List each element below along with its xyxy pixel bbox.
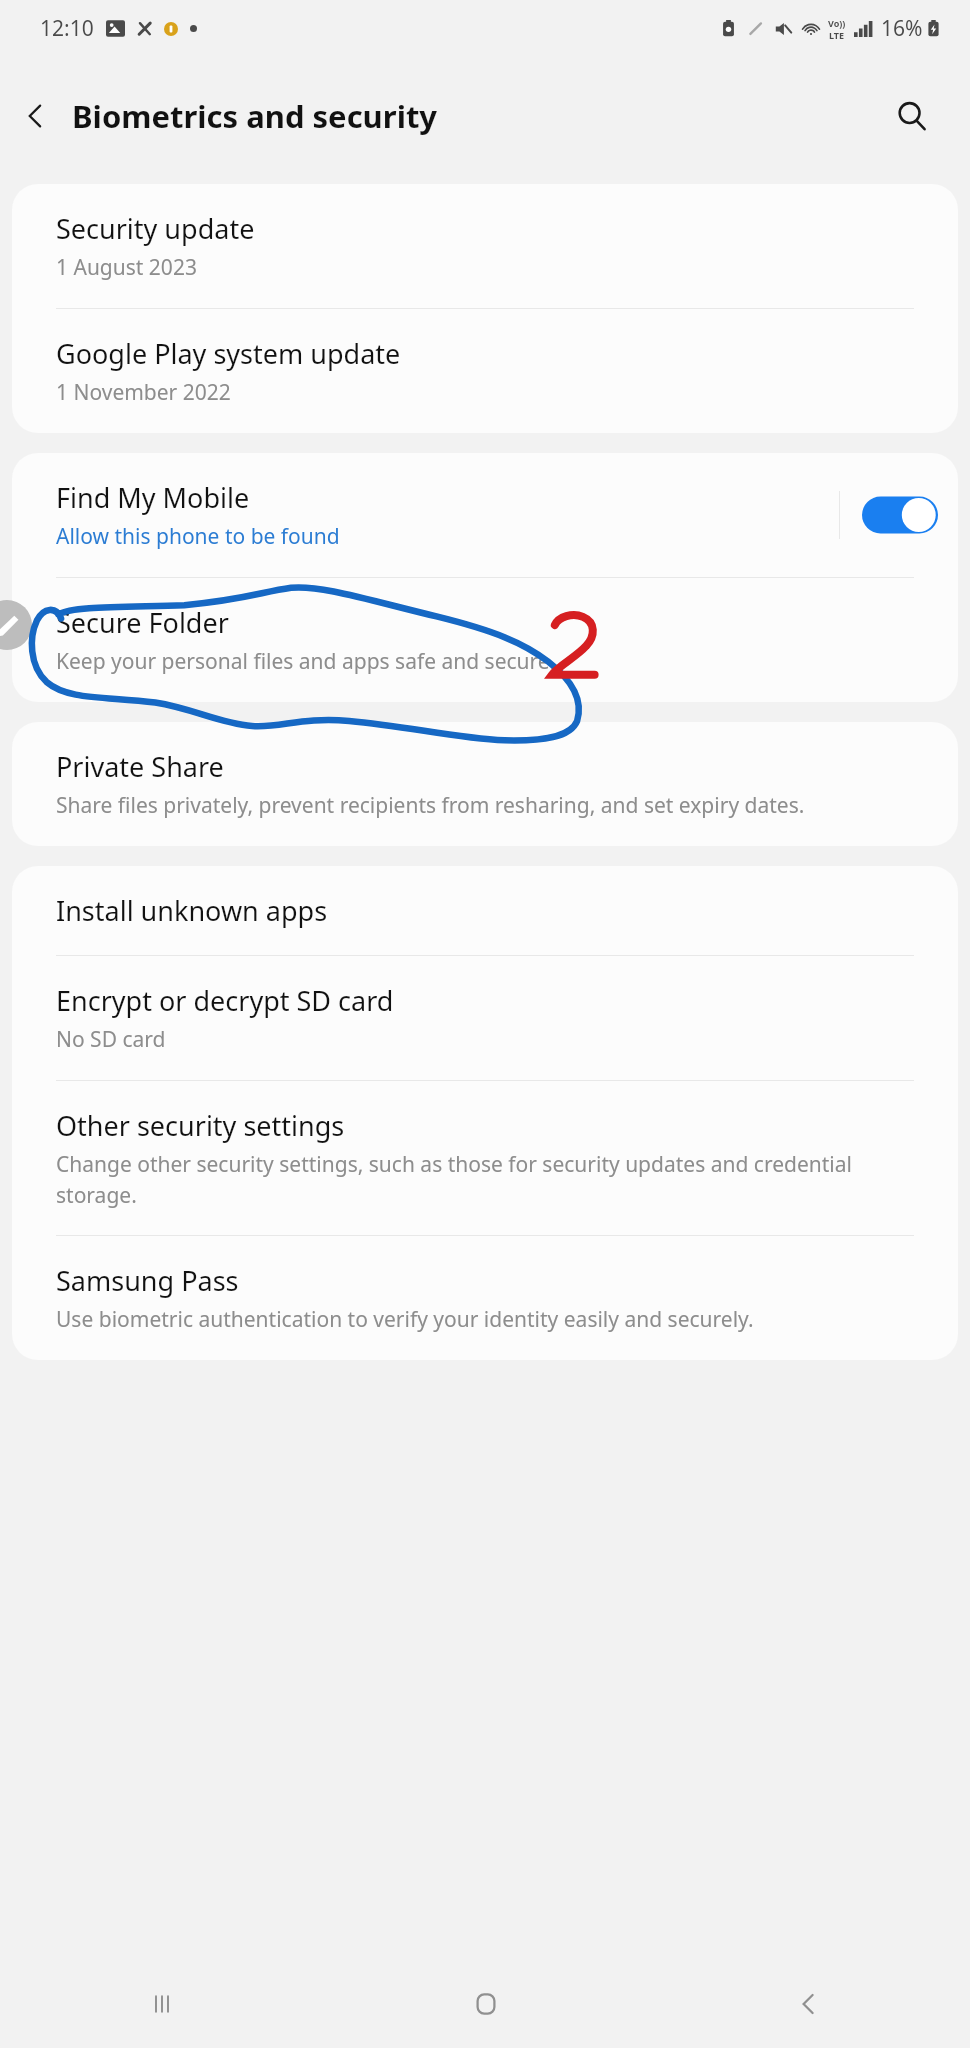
button[interactable]: Back bbox=[647, 1960, 970, 2048]
button[interactable]: Find My Mobile toggle bbox=[862, 493, 938, 537]
button[interactable]: Find My Mobile bbox=[12, 453, 958, 577]
staticText: Keep your personal files and apps safe a… bbox=[56, 647, 556, 676]
staticText: Other security settings bbox=[56, 1107, 345, 1144]
staticText: Share files privately, prevent recipient… bbox=[56, 791, 805, 820]
staticText: Security update bbox=[56, 210, 255, 247]
staticText: 1 August 2023 bbox=[56, 253, 197, 282]
staticText: Vo)) bbox=[828, 17, 846, 29]
button[interactable]: Secure Folder bbox=[12, 578, 958, 702]
staticText: Private Share bbox=[56, 748, 224, 785]
button[interactable]: Encrypt or decrypt SD card bbox=[12, 956, 958, 1080]
staticText: Samsung Pass bbox=[56, 1262, 239, 1299]
button[interactable]: Edit bbox=[0, 600, 32, 650]
staticText: Install unknown apps bbox=[56, 892, 328, 929]
button[interactable]: Other security settings bbox=[12, 1081, 958, 1235]
button[interactable]: Recent apps bbox=[0, 1960, 324, 2048]
staticText: No SD card bbox=[56, 1025, 166, 1054]
button[interactable]: Samsung Pass bbox=[12, 1236, 958, 1360]
button[interactable]: Search bbox=[876, 80, 948, 152]
staticText: Secure Folder bbox=[56, 604, 229, 641]
staticText: Allow this phone to be found bbox=[56, 522, 340, 551]
button[interactable]: Security update bbox=[12, 184, 958, 308]
button[interactable]: Home bbox=[324, 1960, 647, 2048]
staticText: Change other security settings, such as … bbox=[56, 1150, 938, 1209]
staticText: LTE bbox=[829, 29, 845, 41]
staticText: 1 November 2022 bbox=[56, 378, 231, 407]
staticText: Find My Mobile bbox=[56, 479, 250, 516]
button[interactable]: Private Share bbox=[12, 722, 958, 846]
staticText: Encrypt or decrypt SD card bbox=[56, 982, 394, 1019]
staticText: 16% bbox=[881, 14, 923, 43]
staticText: Use biometric authentication to verify y… bbox=[56, 1305, 754, 1334]
staticText: 12:10 bbox=[40, 14, 94, 43]
staticText: Biometrics and security bbox=[72, 95, 438, 137]
staticText: Google Play system update bbox=[56, 335, 401, 372]
button[interactable]: Install unknown apps bbox=[12, 866, 958, 955]
button[interactable]: Back bbox=[0, 80, 72, 152]
button[interactable]: Google Play system update bbox=[12, 309, 958, 433]
